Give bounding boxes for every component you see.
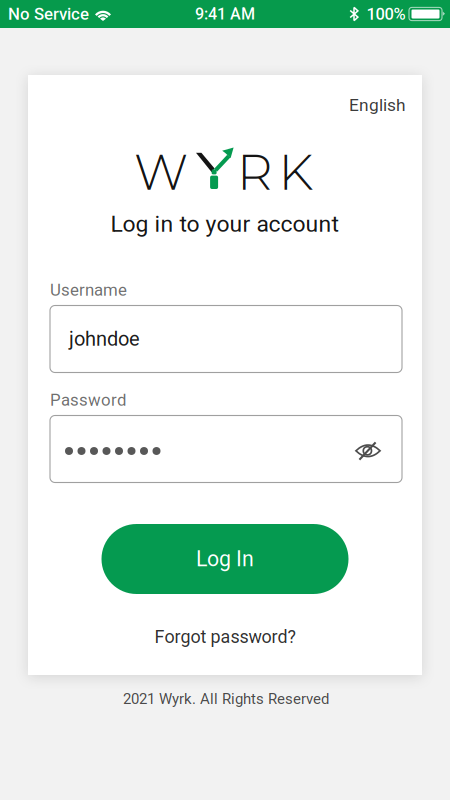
staticText: johndoe	[69, 327, 140, 351]
button[interactable]: Forgot password?	[125, 621, 325, 653]
staticText: 2021 Wyrk. All Rights Reserved	[123, 690, 329, 708]
staticText: Log In	[196, 546, 254, 571]
button[interactable]: Log In	[101, 524, 348, 594]
button[interactable]: English	[316, 89, 406, 121]
staticText: English	[349, 95, 406, 115]
staticText: Log in to your account	[110, 211, 339, 237]
staticText: Username	[50, 280, 127, 300]
staticText: K	[278, 142, 313, 202]
staticText: No Service	[8, 4, 89, 24]
staticText: Forgot password?	[154, 626, 295, 647]
staticText: Password	[50, 390, 126, 410]
staticText: 9:41 AM	[195, 4, 255, 23]
button[interactable]: Show password	[355, 441, 381, 460]
staticText: W	[134, 142, 188, 202]
staticText: R	[237, 142, 273, 202]
staticText: 100%	[366, 4, 405, 24]
